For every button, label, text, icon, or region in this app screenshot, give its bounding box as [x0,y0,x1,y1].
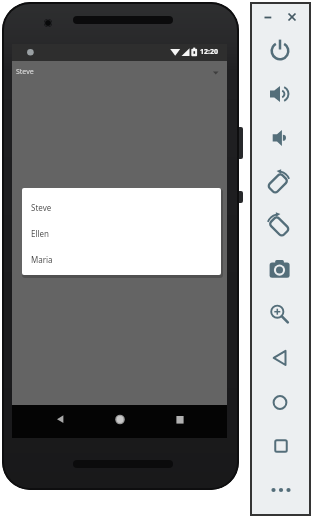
button[interactable] [284,9,300,25]
button[interactable] [267,476,295,504]
button[interactable] [266,36,294,64]
button[interactable] [266,255,294,283]
staticText: Steve [31,202,52,213]
button[interactable] [168,407,192,433]
button[interactable] [266,169,294,197]
button[interactable] [266,344,294,372]
button[interactable] [22,217,221,246]
button[interactable] [260,9,276,25]
button[interactable] [267,432,295,460]
button[interactable] [266,80,294,108]
button[interactable] [266,124,294,152]
button[interactable] [48,407,72,433]
button[interactable] [108,407,132,433]
staticText: Steve [16,67,34,77]
button[interactable]: Steve [12,61,227,85]
button[interactable] [266,389,294,417]
staticText: 12:20 [200,47,218,57]
button[interactable] [22,188,221,217]
button[interactable] [266,300,294,328]
staticText: Maria [31,254,53,265]
staticText: Ellen [31,228,50,239]
button[interactable] [266,212,294,240]
button[interactable] [22,246,221,275]
